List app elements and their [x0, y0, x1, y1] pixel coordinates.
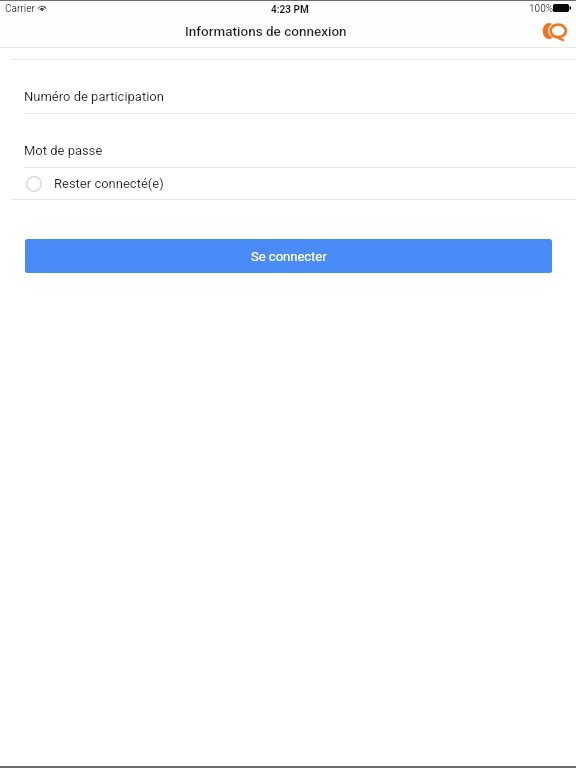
staticText: Mot de passe	[24, 143, 103, 158]
staticText: Rester connecté(e)	[54, 176, 164, 191]
button[interactable]: Numéro de participation	[0, 60, 576, 113]
button[interactable]: Brand logo	[541, 21, 570, 43]
button[interactable]: Mot de passe	[0, 114, 576, 166]
staticText: Se connecter	[251, 249, 327, 264]
staticText: 4:23 PM	[271, 4, 309, 16]
staticText: Informations de connexion	[185, 23, 347, 39]
staticText: Numéro de participation	[24, 89, 164, 104]
button[interactable]: Se connecter	[25, 239, 552, 273]
button[interactable]: Rester connecté(e)	[0, 171, 576, 196]
staticText: 100%	[529, 3, 554, 15]
staticText: Carrier	[5, 3, 35, 15]
